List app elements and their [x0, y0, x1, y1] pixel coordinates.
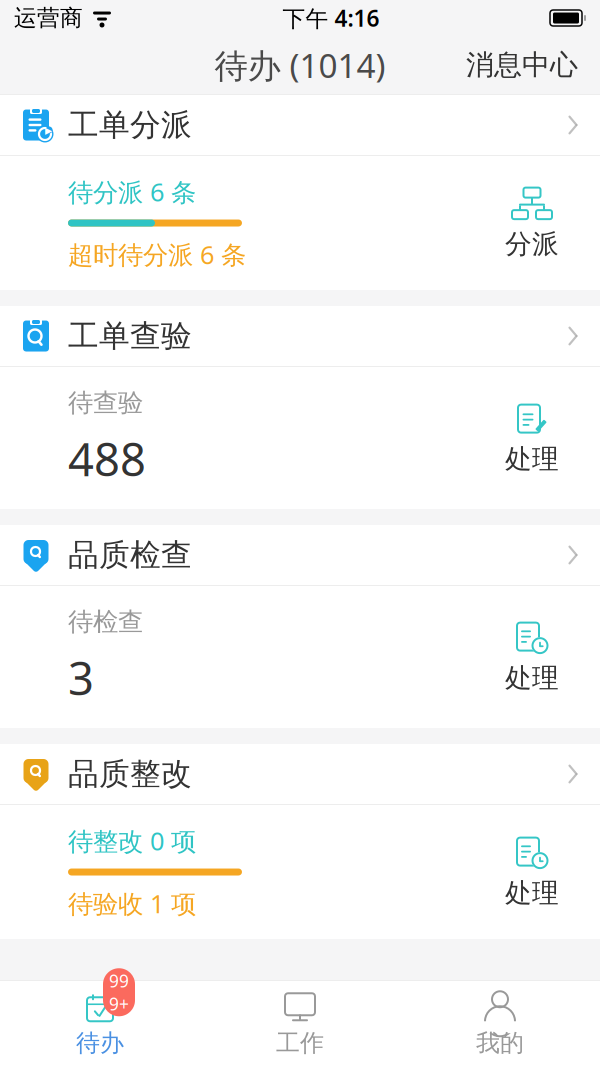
staticText: 处理 [505, 877, 559, 909]
button[interactable]: 处理 [484, 827, 580, 917]
staticText: 运营商 [14, 4, 83, 32]
button[interactable]: 品质检查 [0, 525, 600, 585]
staticText: 待办 [76, 1028, 124, 1058]
staticText: 处理 [505, 443, 559, 475]
staticText: 处理 [505, 662, 559, 694]
staticText: 品质检查 [68, 536, 192, 574]
staticText: 488 [68, 428, 146, 489]
staticText: 待查验 [68, 387, 143, 418]
staticText: 待分派 6 条 [68, 175, 196, 208]
staticText: 待办 (1014) [214, 43, 385, 87]
button[interactable]: 工作 [200, 984, 400, 1064]
button[interactable]: 工单查验 [0, 306, 600, 366]
staticText: 分派 [505, 228, 559, 260]
staticText: 待整改 0 项 [68, 824, 196, 857]
button[interactable]: 分派 [484, 178, 580, 268]
staticText: 待验收 1 项 [68, 886, 196, 920]
staticText: 下午 4:16 [282, 3, 379, 33]
staticText: 工作 [276, 1028, 324, 1058]
button[interactable]: 消息中心 [454, 40, 590, 90]
staticText: 超时待分派 6 条 [68, 237, 246, 271]
staticText: 消息中心 [466, 48, 578, 82]
staticText: ▶ [45, 125, 52, 136]
button[interactable]: 品质整改 [0, 744, 600, 804]
button[interactable]: 处理 [484, 393, 580, 483]
staticText: 我的 [476, 1028, 524, 1058]
staticText: 工单查验 [68, 317, 192, 355]
staticText: 待检查 [68, 606, 143, 637]
staticText: 999+ [109, 969, 129, 1015]
button[interactable]: 我的 [400, 984, 600, 1064]
button[interactable]: ▶ [0, 95, 600, 155]
button[interactable]: 处理 [484, 612, 580, 702]
staticText: 工单分派 [68, 106, 192, 144]
staticText: 品质整改 [68, 755, 192, 793]
staticText: 3 [68, 647, 94, 708]
button[interactable]: 999+ [0, 984, 200, 1064]
